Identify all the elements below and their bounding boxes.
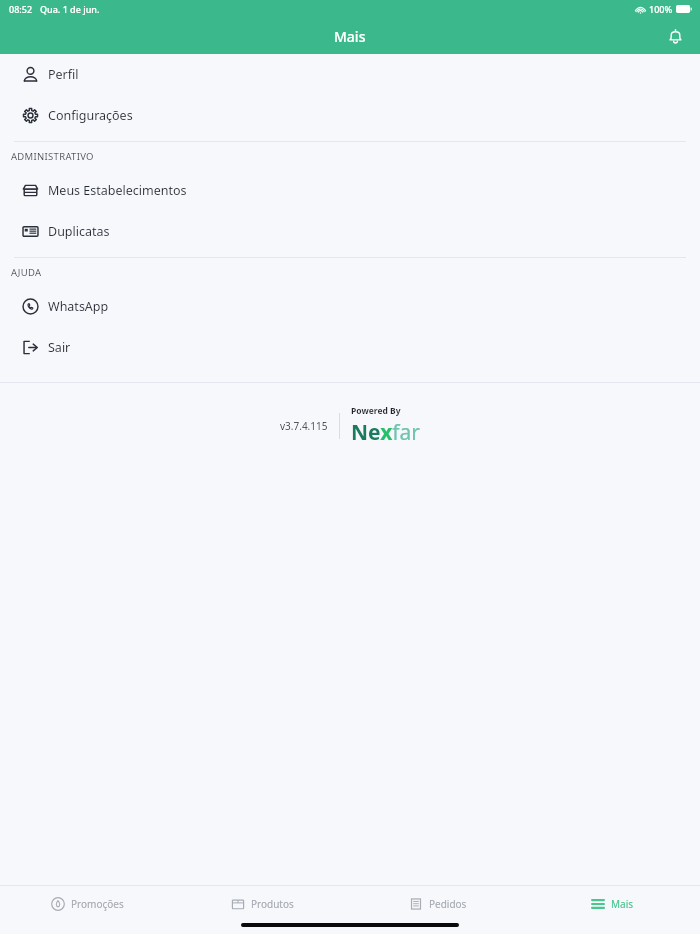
staticText: 08:52	[9, 3, 33, 15]
staticText: Nexfar	[351, 418, 421, 447]
staticText: Duplicatas	[48, 223, 110, 240]
staticText: Promoções	[71, 897, 124, 911]
button[interactable]: Configurações	[0, 95, 700, 136]
button[interactable]: Duplicatas	[0, 211, 700, 252]
staticText: Perfil	[48, 66, 79, 83]
staticText: Qua. 1 de jun.	[40, 3, 100, 15]
staticText: Mais	[334, 27, 366, 46]
button[interactable]: WhatsApp	[0, 286, 700, 327]
button[interactable]: Perfil	[0, 54, 700, 95]
staticText: v3.7.4.115	[280, 419, 328, 433]
button[interactable]: Sair	[0, 327, 700, 368]
staticText: Mais	[611, 897, 634, 911]
button[interactable]: Meus Estabelecimentos	[0, 170, 700, 211]
staticText: AJUDA	[11, 266, 42, 279]
staticText: Powered By	[351, 405, 401, 417]
button[interactable]: Produtos	[175, 886, 350, 921]
staticText: Meus Estabelecimentos	[48, 182, 187, 199]
staticText: Configurações	[48, 107, 133, 124]
staticText: 100%	[649, 3, 673, 15]
staticText: ADMINISTRATIVO	[11, 150, 94, 163]
button[interactable]: Mais	[525, 886, 700, 921]
button[interactable]: Promoções	[0, 886, 175, 921]
staticText: WhatsApp	[48, 298, 109, 315]
staticText: Produtos	[251, 897, 294, 911]
staticText: Pedidos	[429, 897, 467, 911]
button[interactable]: Pedidos	[350, 886, 525, 921]
staticText: Sair	[48, 339, 71, 356]
button[interactable]: Notificações	[658, 19, 692, 53]
